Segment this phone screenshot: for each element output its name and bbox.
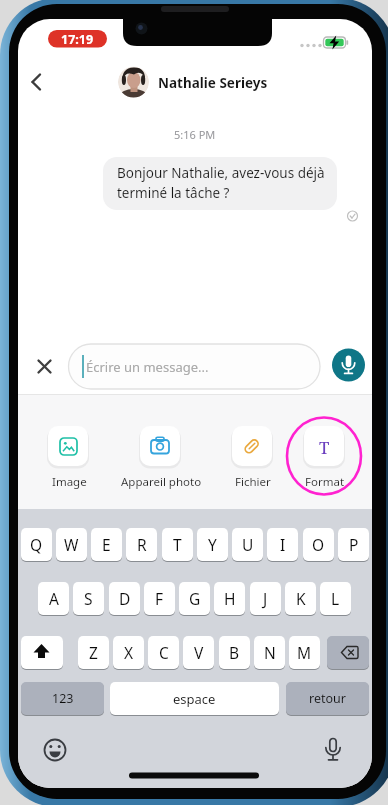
staticText: L <box>331 588 340 609</box>
button[interactable]: I <box>267 528 298 561</box>
staticText: D <box>119 588 131 609</box>
staticText: T <box>173 534 182 555</box>
button[interactable]: C <box>148 636 179 669</box>
button[interactable]: V <box>183 636 214 669</box>
button[interactable] <box>26 66 58 98</box>
staticText: Appareil photo <box>121 474 202 490</box>
button[interactable]: H <box>214 582 245 615</box>
button[interactable]: O <box>303 528 334 561</box>
staticText: W <box>64 534 79 555</box>
button[interactable] <box>304 426 344 466</box>
button[interactable]: Y <box>197 528 228 561</box>
button[interactable] <box>318 735 348 765</box>
staticText: J <box>263 588 268 609</box>
button[interactable]: K <box>285 582 316 615</box>
staticText: U <box>242 534 254 555</box>
staticText: S <box>84 588 93 609</box>
staticText: I <box>280 534 286 555</box>
button[interactable]: M <box>289 636 320 669</box>
staticText: espace <box>173 690 216 708</box>
staticText: N <box>264 642 276 663</box>
button[interactable] <box>48 426 88 466</box>
staticText: Nathalie Serieys <box>158 74 268 92</box>
button[interactable]: S <box>73 582 104 615</box>
staticText: T <box>319 436 330 458</box>
staticText: terminé la tâche ? <box>117 184 230 202</box>
staticText: H <box>224 588 236 609</box>
button[interactable]: D <box>109 582 140 615</box>
staticText: P <box>349 534 359 555</box>
staticText: M <box>297 642 312 663</box>
button[interactable]: X <box>113 636 144 669</box>
staticText: retour <box>309 690 346 707</box>
button[interactable]: A <box>38 582 69 615</box>
staticText: 5:16 PM <box>174 127 216 142</box>
staticText: Écrire un message... <box>86 358 209 376</box>
staticText: 123 <box>52 690 74 707</box>
staticText: Image <box>52 474 87 490</box>
button[interactable]: 123 <box>21 682 104 715</box>
staticText: Format <box>305 474 345 490</box>
button[interactable]: R <box>126 528 157 561</box>
button[interactable] <box>327 636 369 669</box>
button[interactable] <box>232 426 272 466</box>
button[interactable]: N <box>254 636 285 669</box>
button[interactable]: T <box>162 528 193 561</box>
staticText: C <box>159 642 169 663</box>
button[interactable]: G <box>179 582 210 615</box>
button[interactable] <box>40 735 70 765</box>
button[interactable]: E <box>91 528 122 561</box>
button[interactable]: Q <box>21 528 52 561</box>
staticText: Z <box>89 642 98 663</box>
staticText: O <box>312 534 325 555</box>
button[interactable] <box>112 62 282 102</box>
staticText: F <box>155 588 164 609</box>
button[interactable] <box>332 348 365 381</box>
button[interactable] <box>140 426 180 466</box>
staticText: B <box>229 642 240 663</box>
staticText: Q <box>30 534 43 555</box>
staticText: R <box>137 534 147 555</box>
button[interactable]: F <box>144 582 175 615</box>
staticText: E <box>102 534 111 555</box>
staticText: V <box>194 642 204 663</box>
button[interactable] <box>68 344 320 389</box>
button[interactable]: B <box>219 636 250 669</box>
staticText: K <box>296 588 306 609</box>
button[interactable]: P <box>338 528 369 561</box>
button[interactable]: Z <box>78 636 109 669</box>
staticText: 17:19 <box>61 31 94 48</box>
button[interactable]: espace <box>110 682 279 715</box>
button[interactable] <box>21 636 63 669</box>
staticText: Bonjour Nathalie, avez-vous déjà <box>117 164 325 182</box>
staticText: G <box>189 588 201 609</box>
button[interactable]: W <box>56 528 87 561</box>
button[interactable]: U <box>232 528 263 561</box>
button[interactable] <box>33 355 56 378</box>
staticText: X <box>124 642 134 663</box>
staticText: Fichier <box>235 474 271 490</box>
staticText: Y <box>208 534 217 555</box>
button[interactable]: L <box>320 582 351 615</box>
staticText: A <box>49 588 59 609</box>
button[interactable]: J <box>250 582 281 615</box>
button[interactable]: retour <box>286 682 369 715</box>
